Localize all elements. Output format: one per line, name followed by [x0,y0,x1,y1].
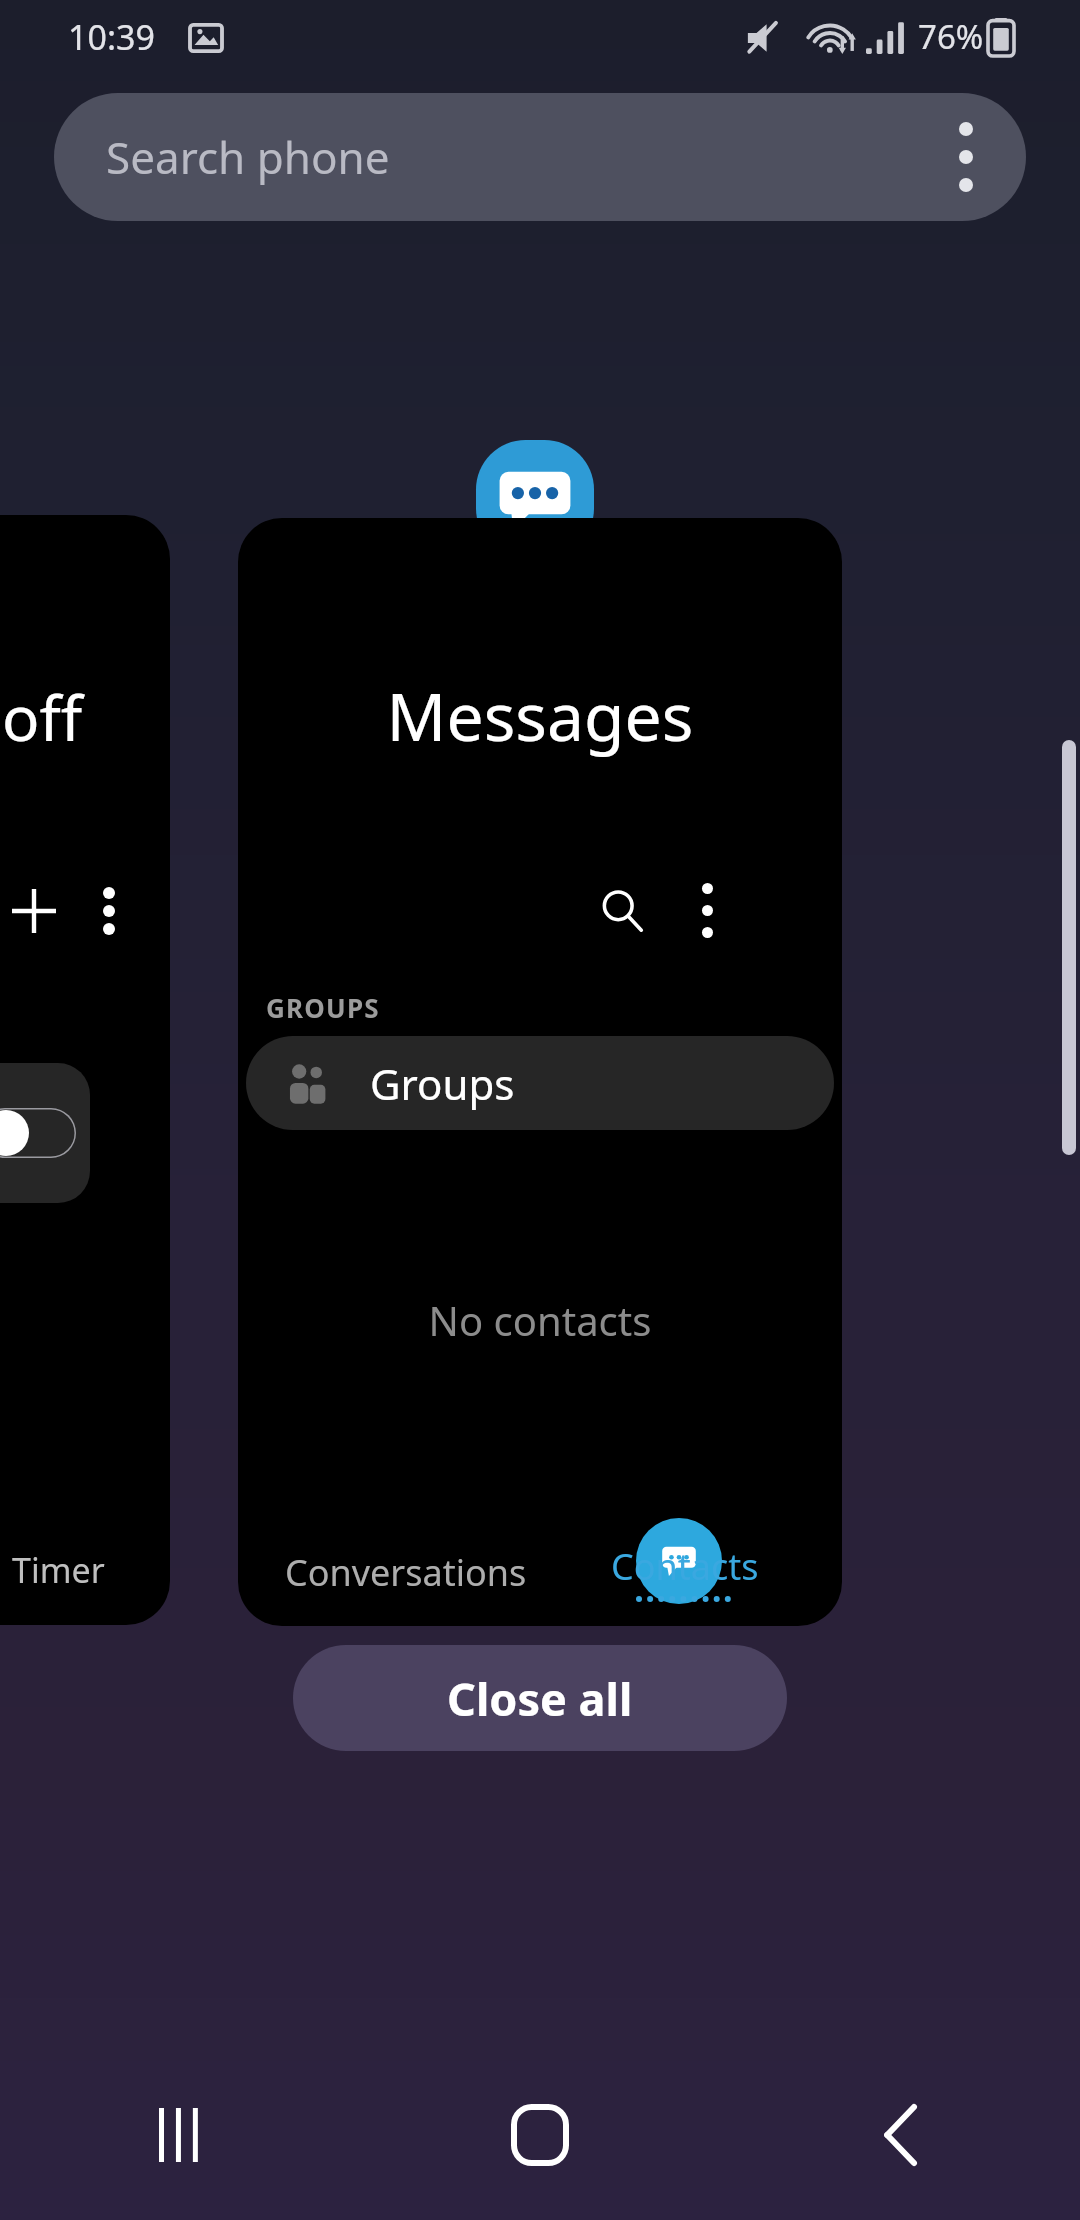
staticText: Messages [238,670,842,760]
staticText: Search phone [106,127,390,187]
staticText: 76% [918,14,984,59]
button[interactable]: Back [720,2050,1080,2220]
staticText: off [2,675,83,759]
other: Messages app [476,440,594,558]
staticText: Contacts [611,1542,759,1591]
button[interactable]: Close all [293,1645,787,1751]
button[interactable]: Messages [238,518,842,1626]
staticText: No contacts [238,1293,842,1347]
staticText: Timer [12,1547,105,1593]
button[interactable]: Recents [0,2050,360,2220]
staticText: Conversations [285,1548,527,1597]
button[interactable]: Groups [246,1036,834,1130]
button[interactable]: Search phone [54,93,1026,221]
button[interactable]: Home [360,2050,720,2220]
button[interactable]: Conversations [276,1526,536,1618]
staticText: GROUPS [266,990,380,1025]
button[interactable]: More options [675,878,739,942]
button[interactable]: off [0,515,170,1625]
staticText: 10:39 [68,14,155,60]
button[interactable]: Search [590,878,654,942]
button[interactable]: Contacts [566,1526,804,1618]
button[interactable]: More options [928,119,1004,195]
staticText: Groups [370,1055,515,1112]
staticText: Close all [447,1668,633,1729]
button[interactable]: New conversation [636,1518,722,1604]
